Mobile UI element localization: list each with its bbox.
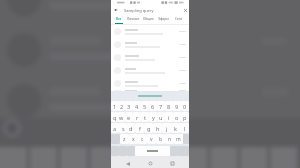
button[interactable]: i — [165, 112, 173, 122]
button[interactable]: 2 — [118, 101, 125, 111]
staticText: o — [175, 114, 179, 121]
staticText: v — [150, 136, 153, 143]
staticText: f — [139, 125, 141, 132]
button[interactable]: c — [138, 134, 147, 144]
button[interactable]: n — [165, 134, 174, 144]
button[interactable]: l — [180, 123, 189, 133]
button[interactable]: 5 — [141, 101, 149, 111]
staticText: Все — [116, 17, 122, 21]
staticText: r — [136, 114, 139, 121]
button[interactable]: 0 — [181, 101, 189, 111]
staticText: 7 — [159, 103, 163, 110]
button[interactable]: a — [111, 123, 119, 133]
button[interactable] — [111, 64, 189, 77]
button[interactable]: Общие — [141, 15, 156, 23]
staticText: Эфиры — [158, 17, 169, 21]
staticText: g — [147, 125, 151, 132]
button[interactable]: f — [135, 123, 144, 133]
staticText: Общие — [143, 17, 154, 21]
button[interactable]: b — [156, 134, 165, 144]
button[interactable]: e — [125, 112, 133, 122]
button[interactable]: Sampling query — [121, 5, 181, 15]
button[interactable] — [111, 51, 189, 64]
staticText: b — [159, 136, 163, 143]
button[interactable]: w — [118, 112, 125, 122]
staticText: d — [129, 125, 133, 132]
button[interactable]: 3 — [125, 101, 133, 111]
staticText: z — [123, 136, 126, 143]
button[interactable]: v — [147, 134, 156, 144]
staticText: Личные — [127, 17, 140, 21]
staticText: 0 — [183, 103, 187, 110]
button[interactable]: m — [174, 134, 183, 144]
staticText: q — [113, 114, 117, 121]
button[interactable] — [111, 90, 189, 91]
button[interactable]: y — [149, 112, 157, 122]
button[interactable]: 4 — [133, 101, 141, 111]
staticText: 4 — [135, 103, 139, 110]
button[interactable]: 1 — [111, 101, 118, 111]
button[interactable]: Clear search — [181, 5, 189, 15]
button[interactable]: 9 — [173, 101, 181, 111]
staticText: c — [141, 136, 144, 143]
button[interactable]: h — [153, 123, 162, 133]
button[interactable]: q — [111, 112, 118, 122]
button[interactable]: Navigate up — [111, 5, 121, 15]
button[interactable]: Личные — [126, 15, 141, 23]
button[interactable]: g — [144, 123, 153, 133]
staticText: t — [144, 114, 146, 121]
staticText: y — [152, 114, 155, 121]
button[interactable] — [111, 38, 189, 51]
button[interactable]: Home — [145, 158, 156, 168]
button[interactable]: 6 — [149, 101, 157, 111]
staticText: 6 — [151, 103, 155, 110]
button[interactable]: t — [141, 112, 149, 122]
button[interactable]: o — [173, 112, 181, 122]
button[interactable]: 7 — [157, 101, 165, 111]
button[interactable] — [111, 25, 189, 38]
staticText: j — [166, 125, 168, 132]
button[interactable]: r — [133, 112, 141, 122]
button[interactable]: p — [181, 112, 189, 122]
staticText: 2 — [120, 103, 124, 110]
button[interactable] — [111, 77, 189, 90]
staticText: x — [132, 136, 135, 143]
button[interactable]: Сети — [171, 15, 186, 23]
button[interactable]: u — [157, 112, 165, 122]
button[interactable]: s — [119, 123, 127, 133]
button[interactable]: x — [129, 134, 138, 144]
staticText: u — [159, 114, 163, 121]
button[interactable]: z — [120, 134, 129, 144]
staticText: n — [168, 136, 172, 143]
staticText: l — [184, 125, 186, 132]
button[interactable]: Space — [135, 146, 170, 156]
staticText: 8 — [167, 103, 171, 110]
staticText: a — [113, 125, 117, 132]
staticText: h — [156, 125, 160, 132]
staticText: 3 — [127, 103, 131, 110]
staticText: p — [183, 114, 187, 121]
staticText: 5 — [143, 103, 147, 110]
staticText: w — [119, 114, 124, 121]
button[interactable]: k — [171, 123, 180, 133]
staticText: 9 — [175, 103, 179, 110]
button[interactable]: Recent apps — [167, 158, 178, 168]
button[interactable]: d — [127, 123, 135, 133]
button[interactable]: Back — [122, 158, 133, 168]
staticText: Sampling query — [124, 8, 154, 13]
button[interactable]: Эфиры — [156, 15, 171, 23]
staticText: 1 — [113, 103, 117, 110]
staticText: m — [176, 136, 181, 143]
button[interactable]: Все — [111, 15, 126, 23]
staticText: k — [174, 125, 177, 132]
button[interactable]: j — [162, 123, 171, 133]
staticText: s — [122, 125, 125, 132]
button[interactable]: 8 — [165, 101, 173, 111]
